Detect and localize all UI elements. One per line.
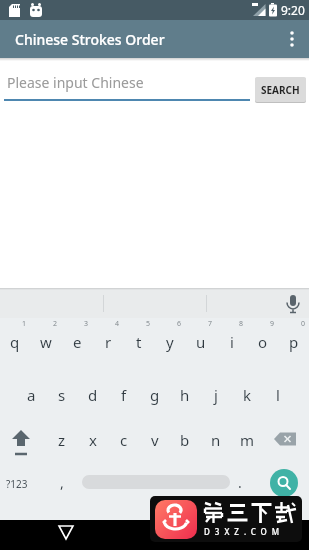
staticText: , [60,473,64,492]
staticText: 0 [301,319,306,329]
staticText: q [10,332,20,352]
staticText: t [136,332,142,352]
staticText: r [105,332,112,352]
staticText: 8 [239,319,244,329]
staticText: m [240,430,255,450]
staticText: 7 [208,319,213,329]
button[interactable] [271,20,309,58]
staticText: c [120,430,128,450]
staticText: f [121,385,127,405]
button[interactable]: SEARCH [255,77,306,102]
staticText: s [58,385,66,405]
staticText: g [150,385,160,405]
staticText: n [211,430,221,450]
staticText: x [89,430,97,450]
staticText: 5 [146,319,151,329]
staticText: D3XZ.COM [204,526,285,537]
staticText: w [40,332,52,352]
staticText: ?123 [6,477,28,491]
staticText: SEARCH [261,83,300,97]
staticText: k [243,385,252,405]
staticText: 2 [53,319,58,329]
staticText: h [180,385,190,405]
staticText: 4 [115,319,120,329]
staticText: a [27,385,36,405]
staticText: e [73,332,82,352]
staticText: b [180,430,190,450]
staticText: i [230,332,234,352]
staticText: 3 [84,319,89,329]
staticText: o [258,332,268,352]
staticText: 9 [270,319,275,329]
staticText: l [276,385,280,405]
button[interactable] [46,520,86,550]
staticText: d [88,385,98,405]
staticText: . [238,473,242,492]
staticText: 1 [22,319,27,329]
button[interactable] [270,426,306,452]
staticText: u [196,332,206,352]
staticText: Chinese Strokes Order [15,30,165,49]
staticText: y [166,332,174,352]
staticText: Please input Chinese [7,73,144,92]
staticText: p [289,332,299,352]
staticText: 9:20 [281,2,305,18]
button[interactable] [0,288,309,318]
staticText: v [151,430,159,450]
staticText: 6 [177,319,182,329]
button[interactable] [2,422,40,458]
staticText: z [58,430,66,450]
staticText: j [214,385,218,405]
button[interactable] [270,469,298,497]
